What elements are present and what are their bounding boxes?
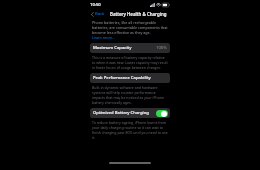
staticText: Peak Performance Capability	[93, 75, 151, 81]
staticText: 10:50	[90, 2, 101, 8]
button[interactable]: Peak Performance Capability	[90, 73, 170, 83]
staticText: Built-in dynamic software and hardware s…	[92, 85, 168, 105]
button[interactable]: Optimized Battery Charging toggle, on	[156, 110, 168, 117]
staticText: This is a measure of battery capacity re…	[92, 55, 168, 70]
button[interactable]: Learn more...	[92, 35, 116, 40]
staticText: Battery Health & Charging	[110, 11, 167, 17]
staticText: Maximum Capacity	[93, 45, 132, 51]
staticText: Optimized Battery Charging	[93, 110, 149, 116]
staticText: Phone batteries, like all rechargeable b…	[92, 20, 168, 35]
staticText: Back	[95, 11, 105, 17]
button[interactable]: Optimized Battery Charging	[90, 108, 170, 118]
staticText: To reduce battery ageing, iPhone learns …	[92, 120, 168, 140]
button[interactable]: Back	[90, 10, 106, 18]
button[interactable]: Maximum Capacity	[90, 43, 170, 53]
staticText: 100%	[156, 45, 167, 51]
